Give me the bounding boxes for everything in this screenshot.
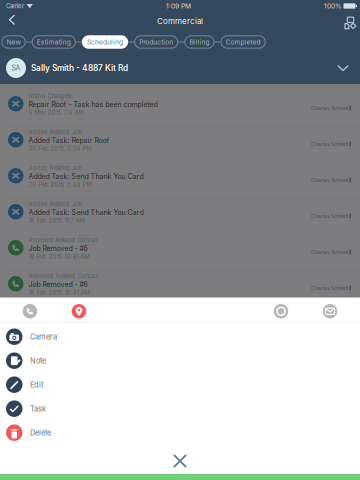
button[interactable]: Message xyxy=(266,301,296,318)
button[interactable]: New xyxy=(2,36,25,48)
staticText: Delete xyxy=(30,428,51,437)
staticText: Added Task: Send Thank You Card xyxy=(28,172,143,181)
staticText: Estimating xyxy=(37,38,71,46)
staticText: Added Task: Send Thank You Card xyxy=(28,208,143,217)
button[interactable]: Estimating xyxy=(32,36,75,48)
button[interactable]: Attachments xyxy=(338,13,357,31)
button[interactable]: Scheduling xyxy=(82,36,128,48)
staticText: Charles Schnell xyxy=(311,285,348,291)
staticText: Added Related Job xyxy=(28,164,82,172)
staticText: Carrier xyxy=(6,2,24,10)
staticText: Note xyxy=(30,356,46,365)
button[interactable]: Call xyxy=(15,301,45,318)
staticText: Commercial xyxy=(157,16,203,26)
button[interactable]: Billing xyxy=(185,36,214,48)
button[interactable]: Expand customer xyxy=(332,58,354,78)
staticText: Scheduling xyxy=(87,38,123,46)
staticText: Charles Schnell xyxy=(311,105,348,111)
button[interactable]: Back xyxy=(3,12,21,32)
staticText: SA xyxy=(11,64,20,72)
staticText: Charles Schnell xyxy=(311,141,348,147)
staticText: Sally Smith - 4887 Kit Rd xyxy=(31,63,128,73)
button[interactable]: Directions xyxy=(64,301,94,318)
button[interactable]: Completed xyxy=(221,36,265,48)
staticText: Repair Roof - Task has been completed xyxy=(28,100,157,109)
staticText: Camera xyxy=(30,332,57,341)
staticText: 18 Feb 2015 10:41 AM xyxy=(28,253,89,260)
staticText: Removed Related Contact xyxy=(28,236,98,244)
staticText: Charles Schnell xyxy=(311,177,348,183)
staticText: Job Removed - #6 xyxy=(28,244,87,253)
staticText: Completed xyxy=(226,38,261,46)
staticText: Charles Schnell xyxy=(311,249,348,255)
staticText: New xyxy=(7,38,21,46)
staticText: 8 May 2015 7:4 AM xyxy=(28,109,83,116)
staticText: Task xyxy=(30,404,46,413)
staticText: 18 Feb 2015 11:7 AM xyxy=(28,217,84,224)
staticText: 18 Feb 2015 10:41 AM xyxy=(28,289,89,296)
staticText: 100% xyxy=(324,2,341,10)
staticText: Removed Related Contact xyxy=(28,272,98,280)
staticText: Production xyxy=(139,38,173,46)
staticText: 1:09 PM xyxy=(166,2,191,10)
button[interactable]: Delete xyxy=(0,421,360,445)
button[interactable]: Close xyxy=(160,450,200,472)
button[interactable]: Note xyxy=(0,349,360,373)
staticText: Job Removed - #6 xyxy=(28,280,87,289)
staticText: Added Related Job xyxy=(28,128,82,136)
staticText: 20 Feb 2015 3:33 PM xyxy=(28,181,91,188)
staticText: Billing xyxy=(189,38,209,46)
staticText: Charles Schnell xyxy=(311,213,348,219)
staticText: 20 Feb 2015 3:34 PM xyxy=(28,145,91,152)
button[interactable]: Production xyxy=(135,36,178,48)
staticText: Added Related Job xyxy=(28,200,82,208)
staticText: Edit xyxy=(30,380,43,389)
button[interactable]: Edit xyxy=(0,373,360,397)
button[interactable]: Email xyxy=(315,301,345,318)
button[interactable]: Camera xyxy=(0,325,360,349)
staticText: Added Task: Repair Roof xyxy=(28,136,109,145)
staticText: Status Changed xyxy=(28,92,71,100)
button[interactable]: Task xyxy=(0,397,360,421)
